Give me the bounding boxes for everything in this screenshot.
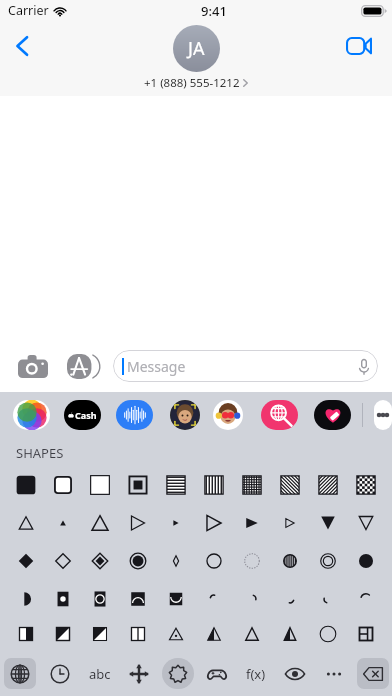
button[interactable]: Shape 0-5: [195, 466, 233, 504]
button[interactable]: Memoji: [213, 400, 243, 430]
button[interactable]: Shape 4-8: [309, 618, 347, 650]
button[interactable]: Shape 1-3: [119, 504, 157, 542]
button[interactable]: Shape 1-8: [309, 504, 347, 542]
button[interactable]: Shape 3-4: [157, 580, 195, 618]
button[interactable]: Shape 4-1: [44, 618, 81, 650]
button[interactable]: Memoji: [170, 400, 200, 430]
button[interactable]: JA: [144, 25, 248, 91]
button[interactable]: App: [116, 400, 153, 430]
button[interactable]: Shape 3-0: [7, 580, 44, 618]
button[interactable]: App: [13, 400, 50, 430]
button[interactable]: Shape 3-6: [233, 580, 271, 618]
button[interactable]: fx: [240, 658, 272, 689]
staticText: +1 (888) 555-1212: [144, 75, 240, 91]
button[interactable]: Shape 2-4: [157, 542, 195, 580]
staticText: Carrier: [8, 2, 49, 19]
button[interactable]: Shape 0-2: [81, 466, 119, 504]
button[interactable]: Shape 3-7: [271, 580, 309, 618]
button[interactable]: Shape 3-9: [347, 580, 385, 618]
button[interactable]: Shape 1-6: [233, 504, 271, 542]
staticText: 9:41: [201, 2, 227, 20]
button[interactable]: Shape 2-5: [195, 542, 233, 580]
button[interactable]: Shape 3-5: [195, 580, 233, 618]
button[interactable]: clock: [44, 658, 76, 689]
button[interactable]: more: [318, 658, 350, 689]
button[interactable]: Shape 2-2: [81, 542, 119, 580]
button[interactable]: Shape 2-0: [7, 542, 44, 580]
button[interactable]: Shape 4-2: [81, 618, 119, 650]
staticText: f(x): [246, 665, 266, 683]
button[interactable]: Shape 4-7: [271, 618, 309, 650]
button[interactable]: Shape 3-1: [44, 580, 81, 618]
button[interactable]: App: [374, 400, 392, 430]
button[interactable]: Shape 0-8: [309, 466, 347, 504]
staticText: Message: [127, 357, 186, 376]
button[interactable]: Camera: [16, 349, 50, 383]
button[interactable]: Shape 1-7: [271, 504, 309, 542]
button[interactable]: Shape 4-5: [195, 618, 233, 650]
button[interactable]: Shape 0-7: [271, 466, 309, 504]
button[interactable]: shapes: [162, 658, 194, 689]
button[interactable]: move: [123, 658, 155, 689]
button[interactable]: Back: [4, 28, 40, 64]
button[interactable]: Shape 0-0: [7, 466, 44, 504]
button[interactable]: Shape 4-4: [157, 618, 195, 650]
button[interactable]: Shape 3-2: [81, 580, 119, 618]
button[interactable]: Shape 2-3: [119, 542, 157, 580]
button[interactable]: del: [357, 658, 389, 689]
button[interactable]: Shape 1-9: [347, 504, 385, 542]
button[interactable]: Shape 0-1: [44, 466, 81, 504]
button[interactable]: abc: [84, 658, 116, 689]
button[interactable]: FaceTime video call: [340, 27, 378, 65]
button[interactable]: Shape 0-9: [347, 466, 385, 504]
button[interactable]: Message: [113, 350, 378, 382]
button[interactable]: App: [314, 400, 351, 430]
button[interactable]: Shape 2-8: [309, 542, 347, 580]
button[interactable]: App Store: [66, 349, 100, 383]
button[interactable]: Apple Cash: [64, 400, 101, 430]
button[interactable]: Shape 2-1: [44, 542, 81, 580]
button[interactable]: Shape 4-9: [347, 618, 385, 650]
staticText: JA: [188, 36, 205, 61]
button[interactable]: Shape 1-0: [7, 504, 44, 542]
button[interactable]: Shape 0-6: [233, 466, 271, 504]
button[interactable]: Shape 0-3: [119, 466, 157, 504]
staticText: Cash: [75, 409, 97, 421]
button[interactable]: Shape 2-9: [347, 542, 385, 580]
button[interactable]: game: [201, 658, 233, 689]
button[interactable]: Shape 2-7: [271, 542, 309, 580]
button[interactable]: eye: [279, 658, 311, 689]
button[interactable]: Shape 3-8: [309, 580, 347, 618]
button[interactable]: globe: [4, 658, 36, 689]
button[interactable]: Shape 4-6: [233, 618, 271, 650]
button[interactable]: Shape 0-4: [157, 466, 195, 504]
button[interactable]: App: [261, 400, 298, 430]
button[interactable]: Shape 1-2: [81, 504, 119, 542]
staticText: SHAPES: [16, 444, 64, 462]
button[interactable]: Shape 1-4: [157, 504, 195, 542]
button[interactable]: Shape 1-5: [195, 504, 233, 542]
button[interactable]: Shape 4-3: [119, 618, 157, 650]
staticText: abc: [89, 665, 111, 683]
button[interactable]: Shape 4-0: [7, 618, 44, 650]
button[interactable]: Shape 2-6: [233, 542, 271, 580]
button[interactable]: Shape 1-1: [44, 504, 81, 542]
button[interactable]: Shape 3-3: [119, 580, 157, 618]
